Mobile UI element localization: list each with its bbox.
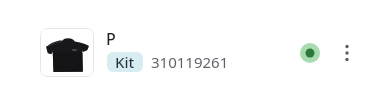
staticText: Kit	[115, 52, 135, 72]
button[interactable]: More options	[334, 40, 360, 66]
staticText: P	[106, 28, 116, 50]
button[interactable]: P	[0, 0, 378, 105]
button[interactable]: Status active	[297, 40, 323, 66]
button[interactable]: Kit	[107, 52, 143, 72]
staticText: 310119261	[151, 52, 229, 72]
